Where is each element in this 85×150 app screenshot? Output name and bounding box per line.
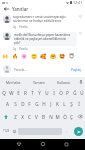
button[interactable]: 🤩 [58,52,66,60]
button[interactable]: 🙌 [1,52,9,60]
staticText: B [42,114,45,120]
staticText: F [28,101,31,107]
button[interactable]: Voice input [76,77,85,87]
staticText: Merhaba [6,80,21,85]
button[interactable]: V [33,110,40,123]
button[interactable]: B [40,110,47,123]
staticText: melih.def Bunuzhosu yaşım kazandınız [14,33,71,37]
staticText: J [50,101,52,107]
button[interactable]: Recents [61,139,71,149]
staticText: I [53,90,55,96]
staticText: 🙂 [31,53,38,59]
button[interactable]: A [3,98,11,110]
button[interactable]: 2 [8,87,15,98]
button[interactable]: G [33,98,40,110]
button[interactable]: Ö [61,110,68,123]
staticText: Y [38,90,41,96]
staticText: 🤗 [50,53,57,59]
staticText: 8 [53,88,55,91]
button[interactable]: S [11,98,19,110]
button[interactable]: J [47,98,54,110]
staticText: L [63,101,66,107]
button[interactable]: 🤗 [49,52,57,60]
button[interactable]: Ğ [71,87,78,98]
staticText: Z [14,114,17,120]
staticText: Q [2,90,6,96]
staticText: O [59,90,63,96]
staticText: 6 [39,88,41,91]
button[interactable]: L [61,98,68,110]
button[interactable]: 🙂 [30,52,38,60]
staticText: A [6,101,9,107]
staticText: Ğ [73,90,77,96]
button[interactable]: Paylaş [70,65,82,73]
staticText: Ö [63,114,67,120]
staticText: 5 [32,88,34,91]
staticText: Yanıtla... [14,67,27,71]
staticText: 🥰 [40,53,47,59]
button[interactable]: Like [77,32,83,38]
staticText: etkinlik ve paylaşım abonelliklerinizi [14,37,66,41]
button[interactable]: Send [71,123,85,139]
button[interactable]: Back [14,139,24,149]
staticText: 0 [67,88,69,91]
button[interactable]: Merhaba [1,77,26,87]
button[interactable]: Emoji [12,123,17,139]
button[interactable]: 😇 [68,52,76,60]
staticText: Tamam [33,80,45,85]
button[interactable]: 8 [50,87,57,98]
staticText: sözlerimizi ve hediye edebilirsiniz [13,19,62,23]
button[interactable]: C [26,110,33,123]
button[interactable]: Kullanıcı [51,77,76,87]
staticText: D [21,101,25,107]
button[interactable]: X [19,110,26,123]
button[interactable]: Ü [78,87,85,98]
button[interactable]: 7 [43,87,50,98]
button[interactable]: K [54,98,61,110]
button[interactable]: İ [75,98,82,110]
button[interactable]: N [47,110,54,123]
staticText: 2g [13,25,17,29]
staticText: 😇 [69,53,75,59]
staticText: V [35,114,38,120]
staticText: T [31,90,34,96]
button[interactable]: 0 [64,87,71,98]
staticText: 🔥 [12,53,19,59]
button[interactable]: Backspace [75,110,85,123]
button[interactable]: Tamam [26,77,51,87]
staticText: S [14,101,17,107]
button[interactable]: Z [11,110,19,123]
button[interactable]: Ş [68,98,75,110]
button[interactable]: H [40,98,47,110]
button[interactable]: 🌸 [20,52,28,60]
button[interactable]: 5 [29,87,36,98]
staticText: 2g [13,47,17,51]
staticText: 7 [46,88,48,91]
staticText: X [21,114,24,120]
button[interactable]: Ç [68,110,75,123]
button[interactable]: Home [38,139,48,149]
staticText: K [56,101,59,107]
button[interactable]: D [19,98,26,110]
staticText: 🌸 [21,53,28,59]
button[interactable]: M [54,110,61,123]
button[interactable]: Like [77,15,83,21]
button[interactable]: 9 [57,87,64,98]
staticText: Ş [70,101,73,107]
button[interactable]: 6 [36,87,43,98]
button[interactable]: ?123 [0,123,12,139]
staticText: 4 [25,88,27,91]
staticText: İ [78,101,80,107]
button[interactable]: 4 [22,87,29,98]
button[interactable]: 3 [15,87,22,98]
button[interactable]: Back [0,5,12,13]
staticText: Yanıtla [19,25,28,29]
button[interactable]: Shift [0,110,11,123]
button[interactable]: 🥰 [39,52,47,60]
button[interactable]: F [26,98,33,110]
staticText: P [66,90,69,96]
button[interactable]: 🔥 [11,52,19,60]
button[interactable]: 1 [0,87,8,98]
